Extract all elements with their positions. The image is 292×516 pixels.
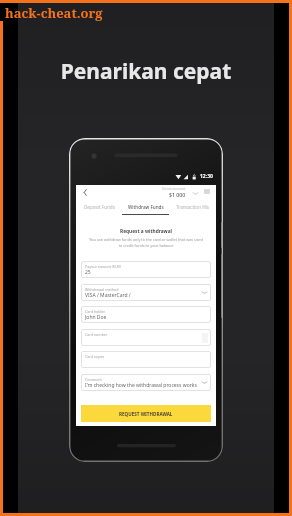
staticText: 25 (85, 269, 91, 276)
staticText: REQUEST WITHDRAWAL (119, 411, 173, 417)
staticText: Withdrawal method (85, 287, 119, 292)
button[interactable]: Back (79, 187, 90, 198)
staticText: Card expire (85, 354, 105, 359)
staticText: Transaction His (176, 204, 209, 210)
button[interactable]: Card holder (81, 306, 211, 323)
staticText: Request a withdrawal (76, 228, 216, 235)
button[interactable]: Comment (81, 374, 211, 391)
button[interactable]: Payout amount (EUR) (81, 261, 211, 278)
staticText: Demo account (162, 186, 186, 191)
staticText: VISA / MasterCard / (85, 292, 131, 299)
staticText: Deposit Funds (84, 204, 115, 210)
button[interactable]: Demo account (162, 186, 186, 198)
button[interactable]: Withdraw Funds (122, 202, 169, 215)
button[interactable]: REQUEST WITHDRAWAL (81, 405, 211, 422)
button[interactable]: Card number (81, 329, 211, 346)
staticText: You can withdraw funds only to the card … (87, 237, 205, 248)
staticText: Penarikan cepat (0, 57, 292, 86)
staticText: $1 000 (169, 191, 186, 198)
button[interactable]: Transaction His (169, 202, 216, 215)
staticText: 12:30 (200, 173, 213, 180)
staticText: I'm checking how the withdrawal process … (85, 382, 197, 389)
button[interactable]: Withdrawal method (81, 284, 211, 301)
staticText: Payout amount (EUR) (85, 264, 121, 269)
button[interactable]: Deposit Funds (76, 202, 122, 215)
button[interactable]: Card expire (81, 351, 211, 368)
staticText: Card holder (85, 309, 105, 314)
staticText: Card number (85, 332, 108, 337)
staticText: Withdraw Funds (128, 204, 164, 210)
staticText: hack-cheat.org (5, 4, 103, 22)
button[interactable]: Account (204, 189, 210, 194)
staticText: Comment (85, 377, 102, 382)
staticText: John Doe (85, 314, 107, 321)
